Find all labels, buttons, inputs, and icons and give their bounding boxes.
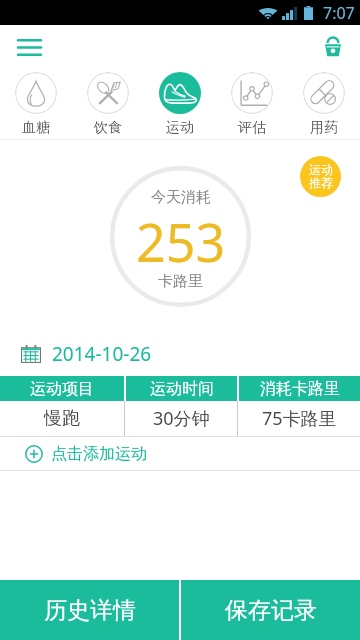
staticText: 饮食: [94, 119, 122, 137]
button[interactable]: 运动: [144, 66, 216, 139]
button[interactable]: 用药: [288, 66, 360, 139]
staticText: 用药: [310, 119, 338, 137]
staticText: 75卡路里: [262, 406, 337, 431]
staticText: 历史详情: [44, 596, 136, 625]
staticText: 运动时间: [150, 379, 214, 399]
button[interactable]: 评估: [216, 66, 288, 139]
staticText: 运动 推荐: [309, 162, 333, 191]
staticText: 评估: [238, 119, 266, 137]
staticText: 慢跑: [44, 407, 80, 430]
staticText: 运动: [166, 119, 194, 137]
button[interactable]: 运动 推荐: [300, 156, 341, 197]
staticText: 7:07: [323, 2, 355, 24]
staticText: 2014-10-26: [52, 341, 152, 367]
staticText: 保存记录: [225, 596, 317, 625]
button[interactable]: Menu: [9, 26, 49, 66]
staticText: 卡路里: [158, 272, 203, 291]
button[interactable]: 血糖: [0, 66, 72, 139]
button[interactable]: 保存记录: [181, 580, 360, 640]
staticText: 运动项目: [30, 379, 94, 399]
button[interactable]: 历史详情: [0, 580, 179, 640]
staticText: 253: [136, 206, 226, 277]
staticText: 消耗卡路里: [260, 379, 340, 399]
button[interactable]: Shop basket: [313, 26, 353, 66]
staticText: 血糖: [22, 119, 50, 137]
staticText: 今天消耗: [151, 188, 211, 207]
button[interactable]: 饮食: [72, 66, 144, 139]
staticText: 30分钟: [153, 406, 210, 431]
button[interactable]: 点击添加运动: [0, 437, 360, 470]
staticText: 点击添加运动: [51, 444, 147, 464]
